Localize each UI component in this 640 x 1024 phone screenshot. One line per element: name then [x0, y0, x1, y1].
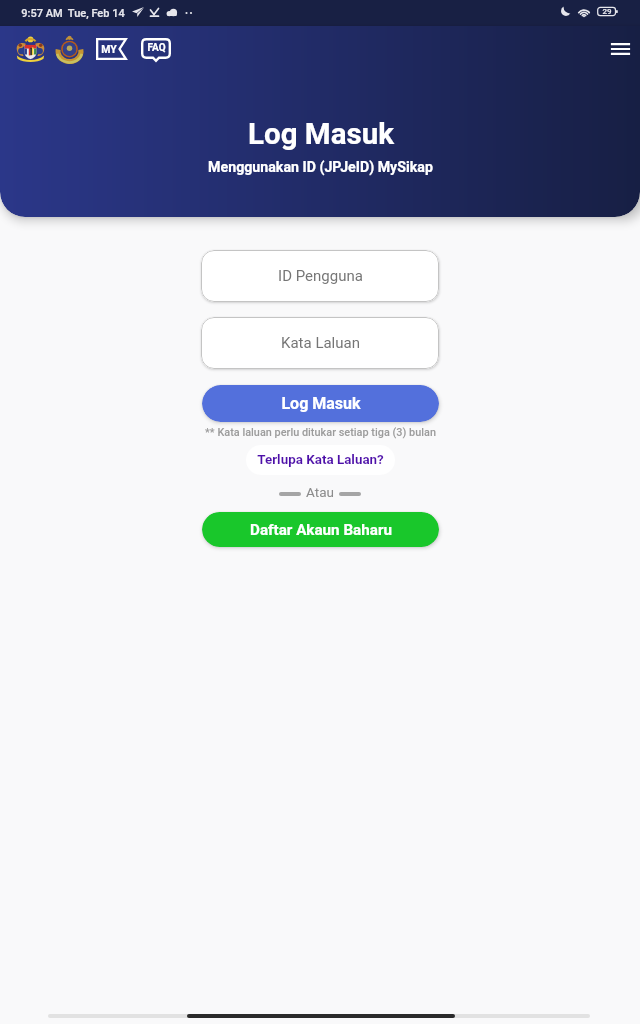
button[interactable]: Daftar Akaun Baharu — [202, 512, 439, 547]
button[interactable]: Log Masuk — [202, 385, 439, 422]
staticText: Log Masuk — [281, 394, 361, 413]
staticText: Atau — [306, 484, 334, 500]
staticText: MY — [101, 43, 117, 55]
staticText: ** Kata laluan perlu ditukar setiap tiga… — [205, 426, 436, 439]
button[interactable]: Open navigation menu — [600, 27, 640, 71]
button[interactable]: Terlupa Kata Laluan? — [246, 445, 395, 475]
staticText: Log Masuk — [248, 117, 394, 152]
staticText: Terlupa Kata Laluan? — [257, 452, 384, 468]
button[interactable]: ID Pengguna — [201, 250, 439, 302]
staticText: Kata Laluan — [281, 334, 360, 352]
staticText: ID Pengguna — [278, 267, 363, 285]
staticText: Menggunakan ID (JPJeID) MySikap — [208, 159, 433, 176]
staticText: 9:57 AM Tue, Feb 14 — [21, 7, 125, 20]
staticText: 29 — [602, 7, 612, 16]
staticText: Daftar Akaun Baharu — [250, 521, 392, 539]
staticText: FAQ — [147, 42, 166, 54]
button[interactable]: Kata Laluan — [201, 317, 439, 369]
